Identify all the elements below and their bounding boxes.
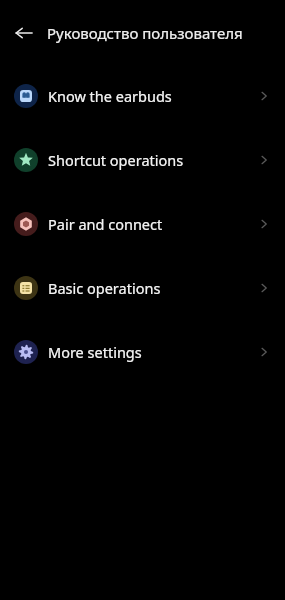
button[interactable]: Pair and connect (0, 192, 285, 256)
staticText: Know the earbuds (48, 86, 257, 106)
button[interactable]: More settings (0, 320, 285, 384)
button[interactable]: Shortcut operations (0, 128, 285, 192)
button[interactable]: Back (8, 17, 40, 49)
staticText: More settings (48, 342, 257, 362)
staticText: Руководство пользователя (47, 23, 243, 43)
button[interactable]: Know the earbuds (0, 64, 285, 128)
button[interactable]: Basic operations (0, 256, 285, 320)
staticText: Pair and connect (48, 214, 257, 234)
staticText: Basic operations (48, 278, 257, 298)
staticText: Shortcut operations (48, 150, 257, 170)
